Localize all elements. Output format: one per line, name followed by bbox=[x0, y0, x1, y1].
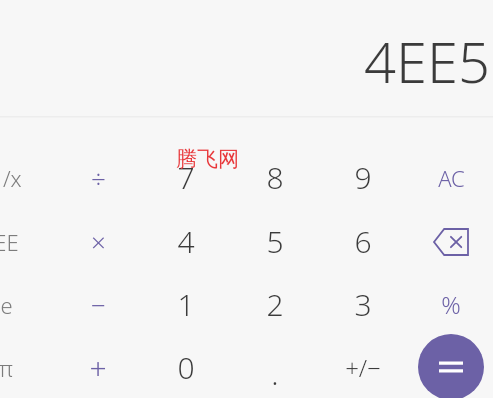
button[interactable]: − bbox=[54, 273, 142, 336]
staticText: 1 bbox=[177, 284, 195, 325]
button[interactable]: . bbox=[231, 342, 319, 398]
staticText: 2 bbox=[266, 284, 284, 325]
staticText: − bbox=[91, 287, 106, 322]
staticText: 0 bbox=[177, 347, 195, 388]
button[interactable]: + bbox=[54, 336, 142, 398]
button[interactable]: 0 bbox=[142, 336, 230, 398]
staticText: % bbox=[441, 288, 461, 321]
button[interactable]: 7 bbox=[142, 146, 230, 209]
staticText: 1/x bbox=[0, 163, 22, 193]
button[interactable]: 1/x bbox=[0, 146, 41, 209]
button[interactable]: e bbox=[0, 273, 41, 336]
staticText: 腾飞网 bbox=[176, 146, 239, 172]
staticText: 9 bbox=[354, 157, 372, 198]
button[interactable]: +/− bbox=[319, 336, 407, 398]
staticText: e bbox=[0, 290, 13, 320]
button[interactable]: 9 bbox=[319, 146, 407, 209]
staticText: 7 bbox=[177, 157, 195, 198]
staticText: EE bbox=[0, 227, 19, 257]
staticText: × bbox=[91, 224, 106, 259]
staticText: 4EE5 bbox=[364, 23, 490, 99]
button[interactable]: AC bbox=[407, 146, 493, 209]
staticText: +/− bbox=[345, 351, 381, 384]
button[interactable]: × bbox=[54, 210, 142, 273]
button[interactable]: 4 bbox=[142, 210, 230, 273]
button[interactable]: % bbox=[407, 273, 493, 336]
button[interactable]: 4EE5 bbox=[0, 0, 493, 116]
button[interactable]: 3 bbox=[319, 273, 407, 336]
staticText: 3 bbox=[354, 284, 372, 325]
staticText: ÷ bbox=[91, 160, 106, 195]
button[interactable]: 6 bbox=[319, 210, 407, 273]
button[interactable]: 1 bbox=[142, 273, 230, 336]
button[interactable]: 2 bbox=[231, 273, 319, 336]
button[interactable]: Equals bbox=[418, 334, 484, 398]
button[interactable]: 5 bbox=[231, 210, 319, 273]
staticText: + bbox=[89, 347, 107, 388]
staticText: π bbox=[0, 353, 13, 383]
staticText: 5 bbox=[266, 221, 284, 262]
staticText: . bbox=[271, 353, 279, 394]
button[interactable]: EE bbox=[0, 210, 41, 273]
button[interactable]: 8 bbox=[231, 146, 319, 209]
staticText: 6 bbox=[354, 221, 372, 262]
staticText: 4 bbox=[177, 221, 195, 262]
staticText: 8 bbox=[266, 157, 284, 198]
button[interactable]: ÷ bbox=[54, 146, 142, 209]
button[interactable]: π bbox=[0, 336, 41, 398]
button[interactable]: Backspace bbox=[407, 210, 493, 273]
staticText: AC bbox=[438, 163, 465, 193]
